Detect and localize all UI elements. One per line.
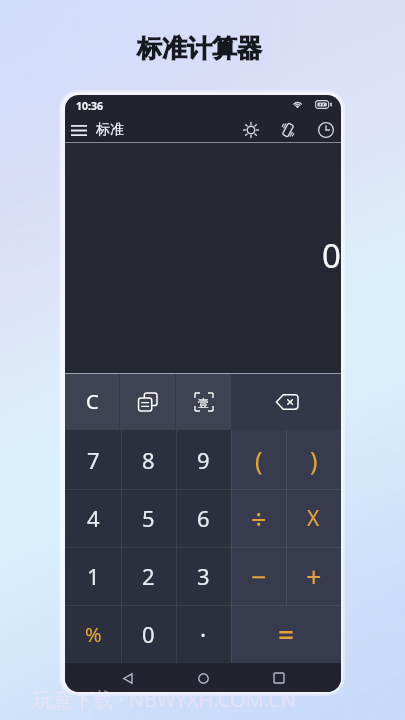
- button[interactable]: Rotate: [275, 117, 301, 143]
- staticText: 6: [197, 503, 210, 533]
- button[interactable]: 4: [65, 489, 121, 547]
- button[interactable]: ÷: [231, 489, 286, 547]
- button[interactable]: (: [231, 430, 286, 489]
- staticText: 9: [197, 445, 210, 475]
- button[interactable]: Menu: [65, 117, 92, 143]
- button[interactable]: −: [231, 547, 286, 605]
- button[interactable]: 5: [121, 489, 176, 547]
- staticText: 0: [142, 619, 155, 649]
- staticText: ·: [200, 619, 207, 650]
- staticText: 标准: [96, 121, 124, 139]
- staticText: −: [251, 558, 267, 595]
- button[interactable]: 0: [121, 605, 176, 663]
- button[interactable]: 标准: [96, 117, 138, 143]
- button[interactable]: =: [231, 605, 341, 663]
- button[interactable]: ·: [176, 605, 231, 663]
- staticText: X: [307, 504, 320, 533]
- button[interactable]: Home: [189, 664, 217, 692]
- button[interactable]: 8: [121, 430, 176, 489]
- button[interactable]: Convert: [176, 373, 231, 430]
- button[interactable]: 1: [65, 547, 121, 605]
- button[interactable]: ): [286, 430, 341, 489]
- button[interactable]: %: [65, 605, 121, 663]
- button[interactable]: History: [313, 117, 339, 143]
- button[interactable]: 3: [176, 547, 231, 605]
- staticText: 8: [142, 445, 155, 475]
- button[interactable]: 2: [121, 547, 176, 605]
- button[interactable]: 6: [176, 489, 231, 547]
- staticText: (: [255, 443, 263, 477]
- button[interactable]: Theme: [238, 117, 264, 143]
- staticText: 1: [87, 561, 100, 591]
- staticText: 3: [197, 561, 210, 591]
- staticText: %: [85, 621, 102, 648]
- staticText: 7: [87, 445, 100, 475]
- staticText: 2: [142, 561, 155, 591]
- staticText: +: [306, 558, 322, 595]
- staticText: C: [86, 388, 99, 415]
- button[interactable]: Recents: [265, 664, 293, 692]
- staticText: 5: [142, 503, 155, 533]
- button[interactable]: X: [286, 489, 341, 547]
- button[interactable]: Copy: [120, 373, 175, 430]
- button[interactable]: +: [286, 547, 341, 605]
- button[interactable]: C: [65, 373, 119, 430]
- staticText: 玩意下载 · NBWYXH.COM.CN: [33, 686, 296, 713]
- staticText: 4: [87, 503, 100, 533]
- button[interactable]: Backspace: [232, 373, 341, 430]
- staticText: ÷: [251, 500, 267, 537]
- staticText: ): [310, 443, 318, 477]
- staticText: 壹: [198, 396, 209, 410]
- staticText: =: [278, 615, 295, 653]
- staticText: 标准计算器: [137, 33, 262, 64]
- button[interactable]: Back: [113, 664, 141, 692]
- staticText: 10:36: [76, 99, 103, 113]
- button[interactable]: 7: [65, 430, 121, 489]
- button[interactable]: 9: [176, 430, 231, 489]
- staticText: 0: [322, 233, 341, 278]
